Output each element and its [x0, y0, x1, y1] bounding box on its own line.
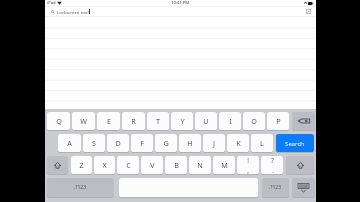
- staticText: U: [203, 116, 209, 126]
- staticText: .?123: [269, 184, 282, 191]
- other: Bookmarks: [306, 9, 311, 14]
- staticText: ?: [271, 156, 274, 165]
- button[interactable]: [119, 178, 258, 198]
- button[interactable]: E: [97, 112, 120, 131]
- staticText: G: [163, 138, 169, 148]
- staticText: O: [251, 116, 257, 126]
- staticText: X: [102, 160, 107, 170]
- staticText: !: [247, 156, 249, 165]
- button[interactable]: P: [267, 112, 289, 131]
- button[interactable]: V: [141, 156, 163, 175]
- staticText: W: [80, 116, 87, 126]
- staticText: D: [115, 138, 121, 148]
- staticText: V: [150, 160, 155, 170]
- button[interactable]: ?: [261, 156, 283, 175]
- staticText: B: [174, 160, 179, 170]
- staticText: C: [126, 160, 131, 170]
- button[interactable]: R: [122, 112, 145, 131]
- button[interactable]: Hide keyboard: [292, 178, 315, 198]
- staticText: R: [131, 116, 136, 126]
- staticText: L: [260, 138, 264, 148]
- button[interactable]: A: [58, 134, 81, 153]
- button[interactable]: Search: [276, 134, 314, 153]
- button[interactable]: Z: [71, 156, 92, 175]
- button[interactable]: H: [179, 134, 201, 153]
- button[interactable]: Q: [47, 112, 70, 131]
- staticText: Search: [285, 139, 305, 147]
- button[interactable]: G: [155, 134, 177, 153]
- staticText: F: [140, 138, 144, 148]
- staticText: iPad: [47, 0, 56, 6]
- staticText: Lockscreen tool: [57, 9, 89, 15]
- staticText: M: [221, 160, 228, 170]
- button[interactable]: K: [227, 134, 249, 153]
- staticText: I: [229, 116, 232, 126]
- button[interactable]: Shift: [286, 156, 314, 175]
- button[interactable]: Lockscreen tool: [45, 6, 316, 17]
- button[interactable]: D: [107, 134, 129, 153]
- button[interactable]: L: [251, 134, 273, 153]
- button[interactable]: T: [147, 112, 169, 131]
- staticText: S: [92, 138, 96, 148]
- button[interactable]: C: [117, 156, 139, 175]
- button[interactable]: M: [213, 156, 235, 175]
- staticText: .?123: [74, 184, 87, 191]
- button[interactable]: Shift: [47, 156, 68, 175]
- button[interactable]: X: [94, 156, 115, 175]
- button[interactable]: U: [195, 112, 217, 131]
- staticText: E: [107, 116, 111, 126]
- button[interactable]: !: [237, 156, 259, 175]
- button[interactable]: N: [189, 156, 211, 175]
- staticText: Q: [56, 116, 62, 126]
- button[interactable]: I: [219, 112, 241, 131]
- staticText: N: [197, 160, 203, 170]
- button[interactable]: Backspace: [292, 112, 315, 131]
- button[interactable]: S: [83, 134, 105, 153]
- staticText: K: [236, 138, 241, 148]
- staticText: A: [67, 138, 72, 148]
- staticText: H: [187, 138, 193, 148]
- staticText: Y: [180, 116, 185, 126]
- button[interactable]: Numbers: [262, 178, 289, 198]
- button[interactable]: Numbers: [47, 178, 114, 198]
- staticText: .: [272, 166, 274, 174]
- staticText: P: [276, 116, 281, 126]
- button[interactable]: Y: [171, 112, 193, 131]
- staticText: ,: [247, 166, 249, 174]
- button[interactable]: B: [165, 156, 187, 175]
- staticText: Z: [79, 160, 84, 170]
- staticText: 10:41 PM: [171, 0, 190, 6]
- button[interactable]: J: [203, 134, 225, 153]
- button[interactable]: F: [131, 134, 153, 153]
- button[interactable]: W: [72, 112, 95, 131]
- staticText: J: [213, 138, 215, 148]
- staticText: T: [156, 116, 160, 126]
- button[interactable]: O: [243, 112, 265, 131]
